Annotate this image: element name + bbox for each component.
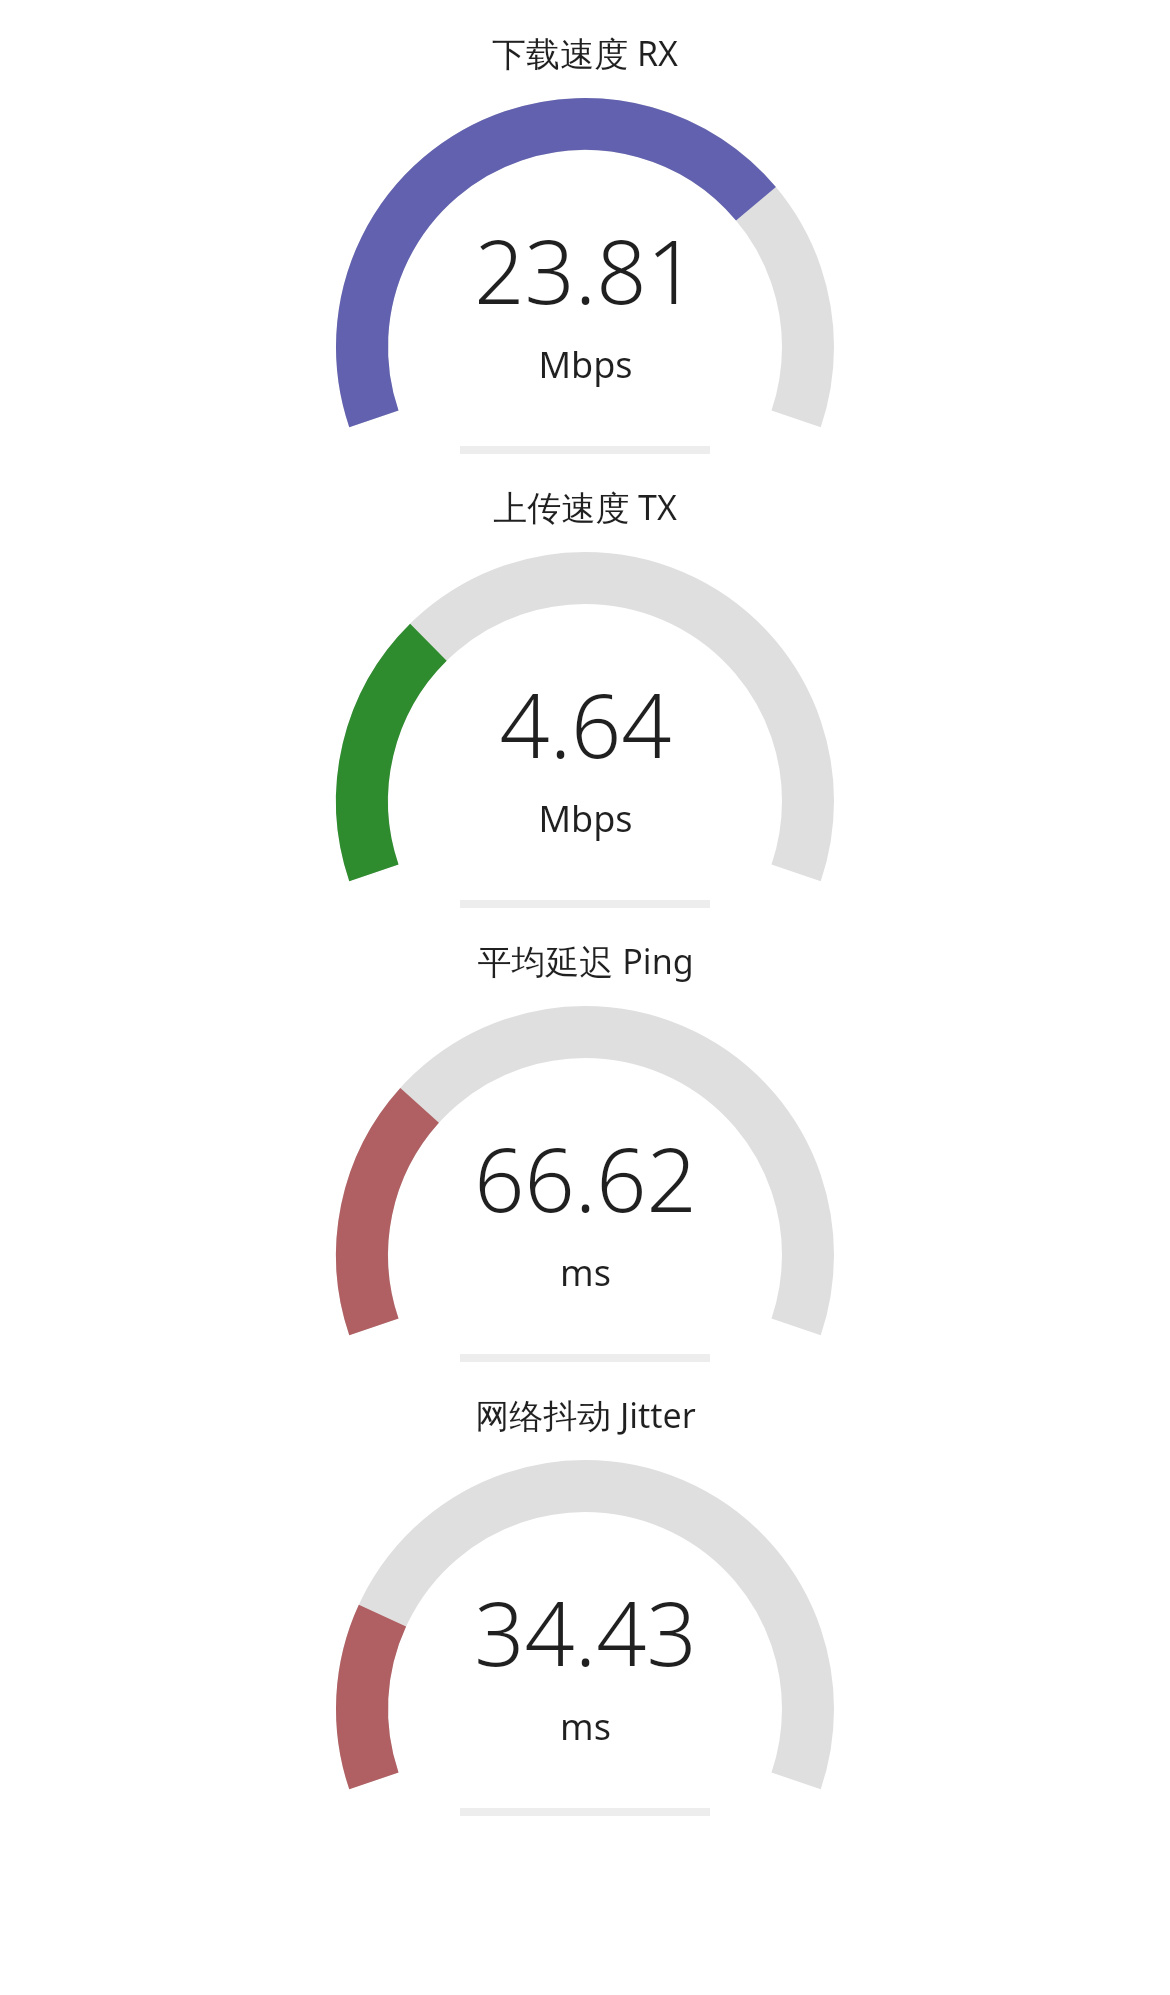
button[interactable]: 下载速度 RX — [0, 0, 1170, 454]
staticText: 66.62 — [474, 1118, 697, 1238]
staticText: Mbps — [538, 794, 633, 843]
button[interactable]: 上传速度 TX — [0, 454, 1170, 908]
staticText: 上传速度 TX — [493, 484, 677, 530]
staticText: 23.81 — [474, 210, 697, 330]
staticText: 下载速度 RX — [492, 30, 678, 76]
staticText: 34.43 — [474, 1572, 697, 1692]
staticText: 平均延迟 Ping — [477, 938, 694, 984]
staticText: 4.64 — [499, 664, 672, 784]
button[interactable]: 网络抖动 Jitter — [0, 1362, 1170, 1816]
button[interactable]: 平均延迟 Ping — [0, 908, 1170, 1362]
staticText: ms — [560, 1702, 611, 1751]
staticText: Mbps — [538, 340, 633, 389]
staticText: ms — [560, 1248, 611, 1297]
staticText: 网络抖动 Jitter — [475, 1392, 696, 1438]
